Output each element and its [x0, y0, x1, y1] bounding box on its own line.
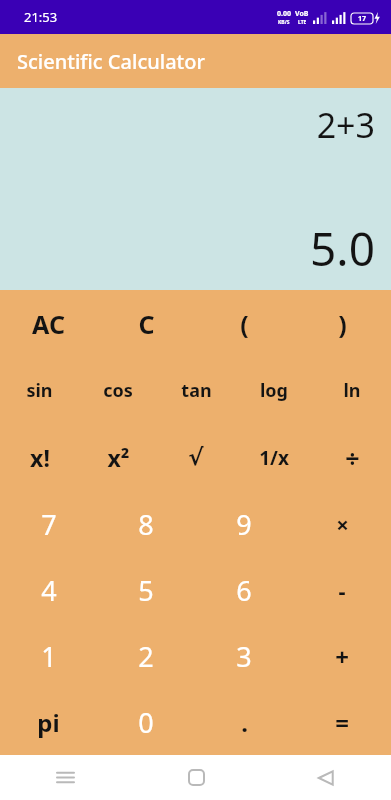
- staticText: -: [338, 575, 346, 605]
- button[interactable]: .: [195, 689, 293, 755]
- button[interactable]: 7: [0, 491, 97, 557]
- button[interactable]: 1: [0, 623, 97, 689]
- button[interactable]: ): [293, 290, 391, 357]
- staticText: 1/x: [259, 445, 289, 471]
- staticText: +: [335, 640, 349, 673]
- button[interactable]: C: [97, 290, 195, 357]
- staticText: (: [240, 307, 249, 341]
- staticText: 4: [41, 572, 57, 609]
- staticText: 9: [236, 506, 252, 543]
- staticText: ln: [343, 378, 361, 403]
- button[interactable]: AC: [0, 290, 97, 357]
- button[interactable]: log: [235, 357, 313, 424]
- staticText: ×: [336, 509, 349, 539]
- button[interactable]: 0: [97, 689, 195, 755]
- button[interactable]: (: [195, 290, 293, 357]
- staticText: tan: [181, 378, 212, 403]
- staticText: 2: [138, 638, 154, 675]
- button[interactable]: √: [157, 424, 235, 491]
- staticText: 1: [41, 638, 57, 675]
- staticText: √: [188, 444, 204, 471]
- button[interactable]: tan: [157, 357, 235, 424]
- staticText: 21:53: [24, 8, 58, 26]
- button[interactable]: pi: [0, 689, 97, 755]
- staticText: VoB: [295, 9, 309, 19]
- staticText: 5: [138, 572, 154, 609]
- staticText: 0: [138, 704, 154, 741]
- button[interactable]: 3: [195, 623, 293, 689]
- button[interactable]: 5: [97, 557, 195, 623]
- button[interactable]: sin: [0, 357, 79, 424]
- button[interactable]: 4: [0, 557, 97, 623]
- staticText: KB/S: [278, 19, 290, 26]
- staticText: sin: [26, 378, 53, 403]
- staticText: AC: [32, 307, 65, 341]
- staticText: log: [260, 378, 288, 403]
- staticText: Scientific Calculator: [17, 48, 205, 75]
- button[interactable]: 8: [97, 491, 195, 557]
- staticText: 3: [236, 638, 252, 675]
- staticText: ): [338, 307, 347, 341]
- staticText: =: [335, 706, 349, 739]
- staticText: pi: [37, 706, 60, 739]
- staticText: 5.0: [310, 217, 375, 280]
- staticText: 8: [138, 506, 154, 543]
- button[interactable]: cos: [79, 357, 157, 424]
- button[interactable]: Back: [261, 755, 391, 800]
- button[interactable]: Recent apps: [0, 755, 131, 800]
- staticText: 0.00: [277, 9, 291, 19]
- staticText: .: [241, 706, 248, 739]
- staticText: x!: [30, 442, 50, 473]
- staticText: LTE: [298, 19, 307, 26]
- staticText: 17: [358, 14, 367, 24]
- button[interactable]: +: [293, 623, 391, 689]
- button[interactable]: 2: [97, 623, 195, 689]
- button[interactable]: x!: [0, 424, 79, 491]
- button[interactable]: 9: [195, 491, 293, 557]
- button[interactable]: ÷: [313, 424, 391, 491]
- staticText: 6: [236, 572, 252, 609]
- staticText: 7: [41, 506, 57, 543]
- button[interactable]: -: [293, 557, 391, 623]
- button[interactable]: ×: [293, 491, 391, 557]
- staticText: C: [138, 307, 155, 341]
- button[interactable]: x²: [79, 424, 157, 491]
- staticText: 2+3: [316, 102, 375, 148]
- staticText: cos: [103, 378, 133, 403]
- button[interactable]: ln: [313, 357, 391, 424]
- staticText: x²: [107, 442, 130, 473]
- button[interactable]: 6: [195, 557, 293, 623]
- button[interactable]: 1/x: [235, 424, 313, 491]
- button[interactable]: =: [293, 689, 391, 755]
- staticText: ÷: [345, 441, 360, 475]
- button[interactable]: Home: [131, 755, 261, 800]
